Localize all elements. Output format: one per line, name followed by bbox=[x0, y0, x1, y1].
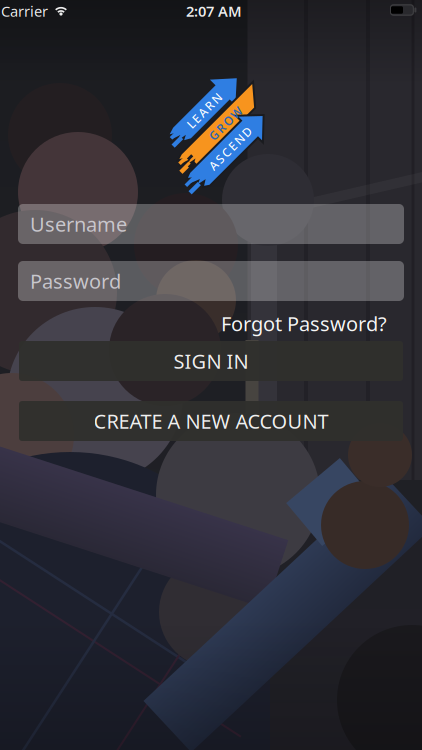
staticText: Forgot Password? bbox=[221, 310, 387, 337]
staticText: Username bbox=[30, 211, 127, 237]
staticText: ASCEND bbox=[203, 140, 258, 156]
button[interactable]: Username bbox=[18, 204, 404, 244]
staticText: Carrier bbox=[1, 1, 48, 21]
button[interactable]: Password bbox=[18, 261, 404, 301]
staticText: GROW bbox=[205, 115, 246, 131]
button[interactable]: Forgot Password? bbox=[221, 310, 387, 337]
staticText: Password bbox=[30, 268, 121, 294]
staticText: 2:07 AM bbox=[186, 1, 242, 21]
staticText: SIGN IN bbox=[173, 348, 248, 374]
staticText: LEARN bbox=[182, 103, 226, 119]
button[interactable]: SIGN IN bbox=[19, 341, 403, 381]
button[interactable]: CREATE A NEW ACCOUNT bbox=[19, 401, 403, 441]
staticText: CREATE A NEW ACCOUNT bbox=[93, 408, 328, 434]
